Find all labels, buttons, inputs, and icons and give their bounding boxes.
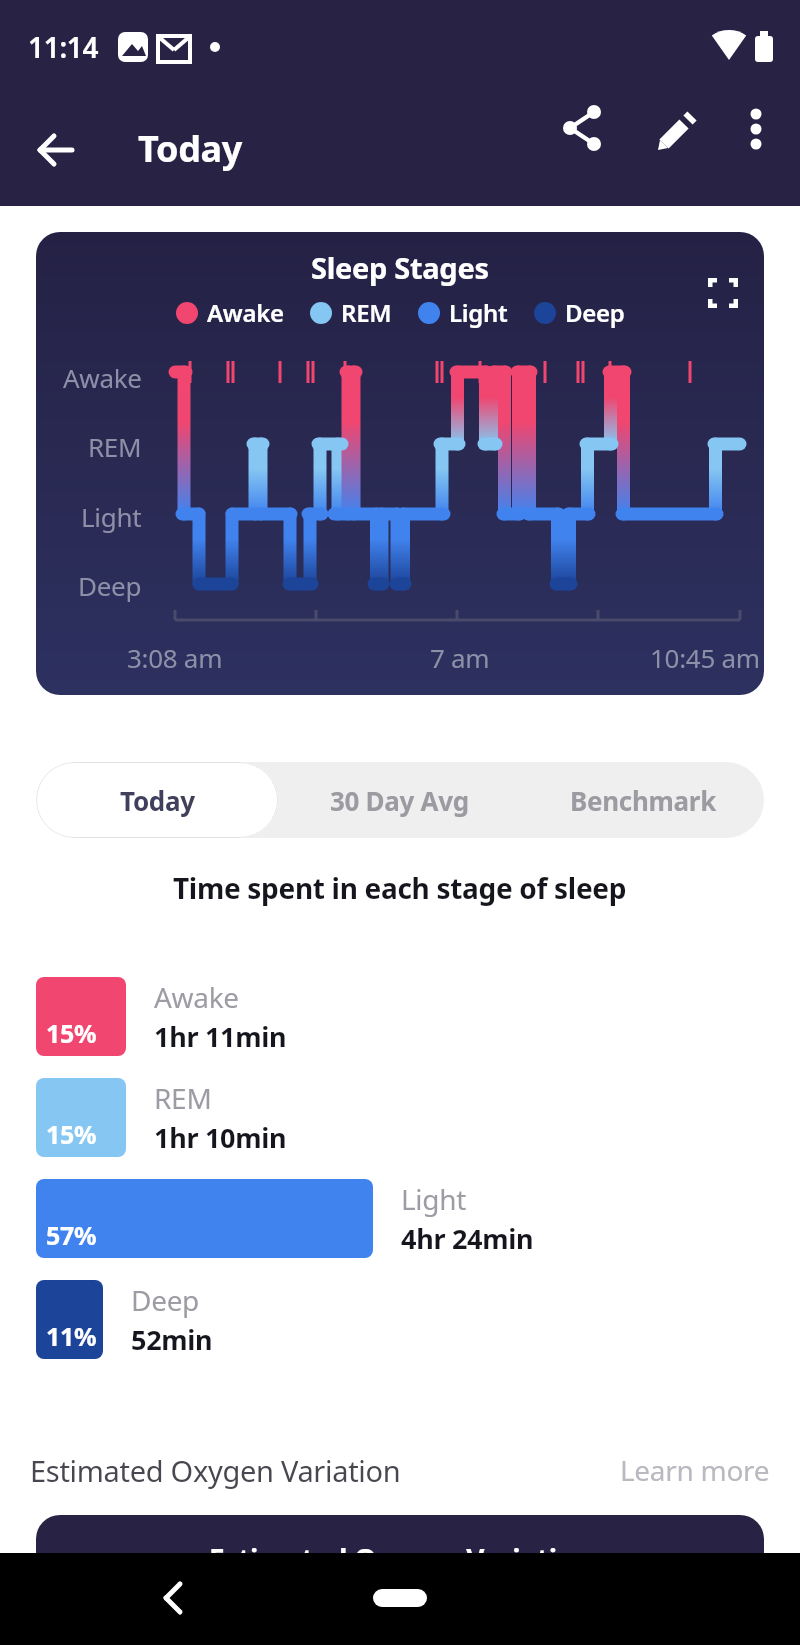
staticText: Light	[449, 296, 508, 329]
staticText: Light	[401, 1180, 467, 1218]
staticText: Estimated Oxygen Variation	[30, 1451, 401, 1490]
staticText: Deep	[131, 1281, 200, 1319]
staticText: Today	[120, 783, 195, 818]
staticText: 11:14	[28, 28, 99, 66]
staticText: REM	[341, 296, 392, 329]
staticText: Benchmark	[570, 783, 716, 818]
button[interactable]	[648, 98, 708, 158]
staticText: 15%	[46, 1016, 97, 1050]
button[interactable]: Estimated Oxygen Variation	[30, 1440, 770, 1500]
staticText: 30 Day Avg	[330, 783, 469, 818]
button[interactable]	[373, 1589, 427, 1607]
staticText: Today	[138, 124, 243, 173]
staticText: 3:08 am	[127, 640, 223, 674]
button[interactable]	[726, 98, 786, 158]
staticText: REM	[88, 429, 142, 463]
staticText: 15%	[46, 1117, 97, 1151]
staticText: 4hr 24min	[401, 1220, 534, 1257]
staticText: Awake	[207, 296, 284, 329]
staticText: 57%	[46, 1218, 97, 1252]
button[interactable]	[552, 98, 612, 158]
button[interactable]: Benchmark	[521, 762, 764, 838]
staticText: 11%	[46, 1319, 97, 1353]
staticText: 7 am	[430, 640, 490, 674]
staticText: 52min	[131, 1321, 213, 1358]
staticText: Estimated Oxygen Variation	[209, 1540, 592, 1553]
staticText: Time spent in each stage of sleep	[173, 869, 627, 907]
staticText: Sleep Stages	[311, 248, 489, 287]
staticText: Deep	[78, 568, 142, 602]
button[interactable]	[30, 120, 82, 172]
staticText: Deep	[565, 296, 625, 329]
staticText: REM	[154, 1079, 212, 1117]
staticText: Light	[81, 499, 142, 533]
staticText: Awake	[154, 978, 239, 1016]
staticText: Awake	[63, 360, 142, 394]
button[interactable]: Today	[36, 762, 278, 838]
staticText: 1hr 10min	[154, 1119, 287, 1156]
staticText: 10:45 am	[650, 640, 760, 674]
staticText: 1hr 11min	[154, 1018, 287, 1055]
button[interactable]: 30 Day Avg	[278, 762, 521, 838]
staticText: Learn more	[620, 1451, 770, 1489]
